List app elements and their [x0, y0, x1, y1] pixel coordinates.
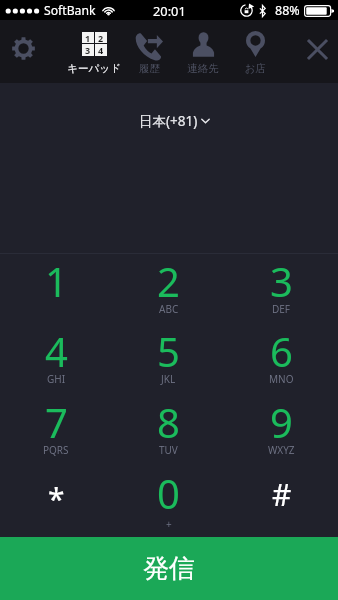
button[interactable]: 発信 [0, 537, 338, 600]
staticText: 88% [275, 2, 300, 19]
button[interactable]: 7 [0, 395, 112, 466]
staticText: 20:01 [153, 2, 186, 19]
staticText: お店 [244, 62, 266, 75]
button[interactable]: 履歴 [123, 20, 175, 83]
staticText: 1 [45, 254, 68, 308]
staticText: 4 [45, 324, 68, 378]
button[interactable]: * [0, 466, 112, 537]
button[interactable]: # [225, 466, 338, 537]
button[interactable]: 1 [66, 20, 122, 83]
button[interactable]: 4 [0, 324, 112, 395]
staticText: ABC [159, 302, 179, 316]
button[interactable]: 5 [112, 324, 225, 395]
button[interactable]: 連絡先 [177, 20, 229, 83]
staticText: DEF [272, 302, 291, 316]
button[interactable]: 0 [112, 466, 225, 537]
staticText: 3 [270, 254, 293, 308]
button[interactable]: 2 [112, 254, 225, 324]
staticText: 2 [98, 32, 104, 43]
button[interactable]: 8 [112, 395, 225, 466]
button[interactable]: 3 [225, 254, 338, 324]
staticText: SoftBank [44, 2, 96, 19]
staticText: 発信 [143, 552, 195, 585]
staticText: 6 [270, 324, 293, 378]
button[interactable]: 6 [225, 324, 338, 395]
staticText: TUV [159, 443, 178, 457]
button[interactable]: 1 [0, 254, 112, 324]
staticText: 0 [157, 466, 180, 520]
staticText: 8 [157, 395, 180, 449]
button[interactable]: Close [294, 20, 338, 83]
staticText: 7 [45, 395, 68, 449]
staticText: JKL [161, 372, 176, 386]
staticText: PQRS [43, 443, 69, 457]
staticText: 連絡先 [187, 62, 219, 75]
staticText: 3 [85, 44, 91, 56]
staticText: 日本(+81) [139, 112, 198, 130]
staticText: キーパッド [67, 62, 121, 75]
staticText: 9 [270, 395, 293, 449]
button[interactable]: 9 [225, 395, 338, 466]
staticText: 1 [85, 32, 91, 43]
staticText: + [166, 517, 172, 531]
staticText: WXYZ [268, 443, 295, 457]
button[interactable]: お店 [229, 20, 281, 83]
staticText: MNO [269, 372, 294, 386]
button[interactable]: Settings [0, 20, 46, 83]
staticText: * [48, 478, 65, 519]
staticText: # [272, 474, 292, 515]
staticText: 2 [157, 254, 180, 308]
staticText: 履歴 [139, 62, 160, 75]
staticText: 5 [157, 324, 180, 378]
button[interactable]: 日本(+81) [0, 83, 338, 141]
staticText: GHI [47, 372, 66, 386]
staticText: 4 [98, 44, 104, 56]
